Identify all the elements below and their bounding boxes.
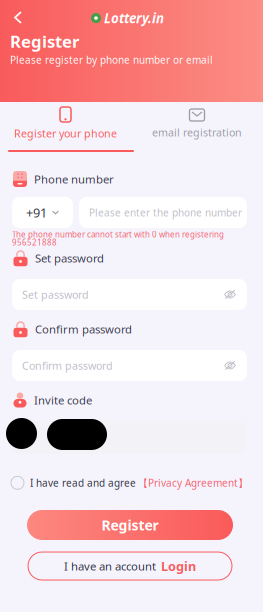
- staticText: Register your phone: [14, 126, 117, 140]
- staticText: Register: [101, 515, 158, 535]
- staticText: Phone number: [34, 171, 114, 187]
- button[interactable]: Back: [4, 5, 32, 30]
- staticText: Set password: [35, 250, 104, 266]
- button[interactable]: Register: [27, 510, 233, 540]
- button[interactable]: I have an account: [28, 552, 232, 580]
- staticText: Register: [10, 30, 79, 53]
- button[interactable]: Show password: [218, 360, 242, 370]
- staticText: Lottery.in: [104, 9, 164, 27]
- staticText: Set password: [22, 287, 89, 302]
- staticText: Please register by phone number or email: [10, 53, 213, 67]
- staticText: The phone number cannot start with 0 whe…: [12, 229, 224, 240]
- staticText: Please enter the phone number: [89, 206, 242, 219]
- staticText: Confirm password: [22, 358, 113, 373]
- button[interactable]: +91: [12, 197, 73, 228]
- button[interactable]: Register your phone: [0, 104, 131, 153]
- staticText: Invite code: [34, 392, 92, 408]
- staticText: +91: [26, 204, 47, 221]
- button[interactable]: Show password: [218, 289, 242, 299]
- button[interactable]: I have read and agree: [11, 472, 248, 494]
- staticText: Confirm password: [35, 321, 132, 337]
- staticText: 【Privacy Agreement】: [138, 476, 248, 490]
- staticText: email registration: [152, 125, 242, 139]
- button[interactable]: email registration: [131, 104, 263, 153]
- staticText: Login: [161, 557, 196, 575]
- staticText: 956521888: [12, 237, 57, 248]
- staticText: I have an account: [64, 558, 156, 574]
- staticText: I have read and agree: [30, 476, 136, 490]
